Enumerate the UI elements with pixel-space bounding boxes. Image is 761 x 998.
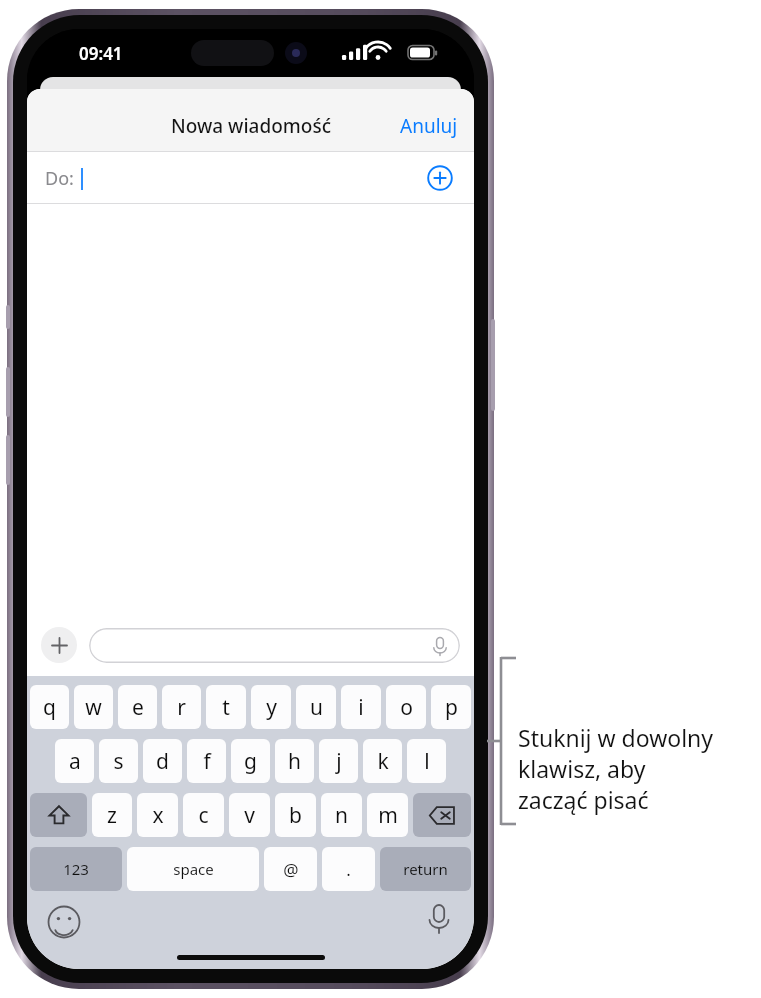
button[interactable]: Shift	[30, 793, 87, 837]
button[interactable]: q	[30, 685, 69, 729]
button[interactable]: u	[296, 685, 336, 729]
staticText: h	[288, 747, 301, 776]
staticText: 123	[63, 859, 89, 879]
staticText: Stuknij w dowolny	[518, 722, 714, 753]
button[interactable]: b	[275, 793, 316, 837]
button[interactable]: v	[229, 793, 270, 837]
staticText: n	[335, 801, 348, 830]
staticText: klawisz, aby	[518, 753, 646, 784]
staticText: return	[403, 859, 448, 879]
button[interactable]: Emoji	[47, 905, 81, 939]
staticText: u	[310, 693, 323, 722]
button[interactable]: .	[322, 847, 375, 891]
button[interactable]: space	[127, 847, 259, 891]
staticText: q	[43, 693, 56, 722]
staticText: x	[152, 801, 164, 830]
button[interactable]: h	[275, 739, 314, 783]
button[interactable]: return	[380, 847, 471, 891]
staticText: Do:	[45, 166, 74, 191]
staticText: e	[132, 693, 144, 722]
staticText: .	[346, 858, 351, 881]
staticText: s	[113, 747, 124, 776]
other: Dyktowanie	[433, 636, 447, 656]
staticText: l	[424, 747, 430, 776]
button[interactable]: w	[74, 685, 113, 729]
button[interactable]: x	[137, 793, 178, 837]
button[interactable]: Do:	[27, 152, 474, 204]
button[interactable]: l	[407, 739, 446, 783]
button[interactable]: z	[92, 793, 132, 837]
staticText: j	[336, 747, 342, 776]
staticText: o	[400, 693, 413, 722]
staticText: f	[203, 747, 211, 776]
staticText: v	[244, 801, 255, 830]
button[interactable]: i	[341, 685, 381, 729]
button[interactable]: r	[162, 685, 201, 729]
button[interactable]: p	[431, 685, 471, 729]
button[interactable]: e	[118, 685, 157, 729]
button[interactable]: Backspace	[413, 793, 471, 837]
button[interactable]: Dodaj kontakt	[420, 158, 460, 198]
button[interactable]: Dyktowanie	[89, 628, 460, 663]
staticText: g	[244, 747, 257, 776]
staticText: m	[378, 801, 398, 830]
button[interactable]: d	[143, 739, 182, 783]
button[interactable]: o	[386, 685, 426, 729]
button[interactable]: a	[55, 739, 94, 783]
staticText: i	[358, 693, 364, 722]
staticText: @	[283, 858, 299, 881]
button[interactable]: m	[367, 793, 408, 837]
button[interactable]: n	[321, 793, 362, 837]
staticText: w	[85, 693, 102, 722]
staticText: y	[266, 693, 277, 722]
button[interactable]: @	[264, 847, 317, 891]
staticText: a	[69, 747, 81, 776]
button[interactable]: y	[251, 685, 291, 729]
staticText: Anuluj	[400, 113, 458, 139]
staticText: d	[156, 747, 169, 776]
button[interactable]: Dyktowanie	[426, 903, 452, 937]
staticText: t	[222, 693, 230, 722]
button[interactable]: j	[319, 739, 358, 783]
button[interactable]: Anuluj	[384, 105, 474, 147]
button[interactable]: 123	[30, 847, 122, 891]
button[interactable]: Więcej	[41, 627, 77, 663]
staticText: space	[173, 859, 214, 879]
button[interactable]: s	[99, 739, 138, 783]
staticText: Nowa wiadomość	[171, 113, 331, 139]
button[interactable]: t	[206, 685, 246, 729]
staticText: r	[177, 693, 186, 722]
button[interactable]: f	[187, 739, 226, 783]
staticText: k	[377, 747, 389, 776]
button[interactable]: k	[363, 739, 402, 783]
staticText: 09:41	[79, 42, 123, 65]
staticText: c	[198, 801, 209, 830]
staticText: z	[107, 801, 117, 830]
button[interactable]: c	[183, 793, 224, 837]
button[interactable]: g	[231, 739, 270, 783]
staticText: zacząć pisać	[518, 784, 649, 815]
staticText: p	[445, 693, 458, 722]
staticText: b	[289, 801, 302, 830]
